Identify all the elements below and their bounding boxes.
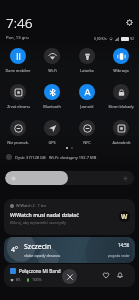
staticText: 92: [130, 36, 134, 41]
staticText: Autoobrót: [112, 140, 131, 145]
staticText: Kliknij, aby wyświetlić szczegóły: [10, 220, 66, 225]
staticText: 85: [16, 277, 21, 282]
staticText: 4°: [11, 245, 18, 255]
button[interactable]: 4°: [4, 237, 135, 263]
staticText: Pon, 13 gru: [6, 35, 29, 41]
staticText: NFC: [83, 140, 91, 145]
button[interactable]: Clear all notifications: [62, 269, 77, 284]
button[interactable]: Jasność: [70, 84, 104, 109]
staticText: Jasność: [80, 104, 94, 109]
button[interactable]: WiWatch 2 · 1 tm: [4, 199, 135, 235]
staticText: Połączono Mi Band: [19, 268, 61, 274]
button[interactable]: GPS: [35, 120, 69, 145]
button[interactable]: Dane mobilne: [1, 48, 35, 73]
staticText: WiWatch musi nadal działać: [10, 211, 79, 218]
button[interactable]: Połączono Mi Band: [4, 264, 135, 287]
button[interactable]: Wibracja: [104, 48, 138, 73]
staticText: Zrzut ekranu: [7, 104, 30, 109]
staticText: 100%: [32, 277, 42, 282]
button[interactable]: Settings: [124, 17, 134, 27]
staticText: 7:46: [6, 14, 33, 32]
staticText: Dysk: 37/128 GB: [15, 155, 46, 160]
button[interactable]: Notifications: [114, 269, 126, 281]
staticText: Dane mobilne: [5, 68, 31, 73]
staticText: WiWatch 2 · 1 tm: [16, 203, 46, 208]
button[interactable]: Ekran blokady: [104, 84, 138, 109]
button[interactable]: Latarka: [70, 48, 104, 73]
staticText: pogoda radar: [108, 253, 130, 258]
button[interactable]: Dysk: 37/128 GB: [6, 154, 133, 160]
button[interactable]: Zrzut ekranu: [1, 84, 35, 109]
staticText: Nie przeszk.: [7, 140, 29, 145]
button[interactable]: Wi-Fi: [35, 48, 69, 73]
staticText: W: [121, 212, 128, 221]
staticText: Bluetooth: [43, 104, 61, 109]
button[interactable]: Bluetooth: [35, 84, 69, 109]
staticText: 0,00 K/s: [94, 36, 107, 41]
staticText: Wi-Fi: dostępny 192.7 MB: [49, 155, 97, 160]
staticText: Latarka: [80, 68, 94, 73]
staticText: Szczecin: [24, 242, 52, 252]
button[interactable]: Heart rate: [100, 269, 112, 281]
staticText: Wi-Fi: [48, 68, 57, 73]
staticText: słabe opady deszczu: [24, 253, 61, 258]
button[interactable]: Autoobrót: [104, 120, 138, 145]
button[interactable]: Nie przeszk.: [1, 120, 35, 145]
staticText: 14:56: [118, 242, 130, 248]
staticText: Wibracja: [113, 68, 129, 73]
staticText: GPS: [48, 140, 56, 145]
button[interactable]: [5, 171, 134, 185]
staticText: Ekran blokady: [108, 104, 134, 109]
button[interactable]: NFC: [70, 120, 104, 145]
